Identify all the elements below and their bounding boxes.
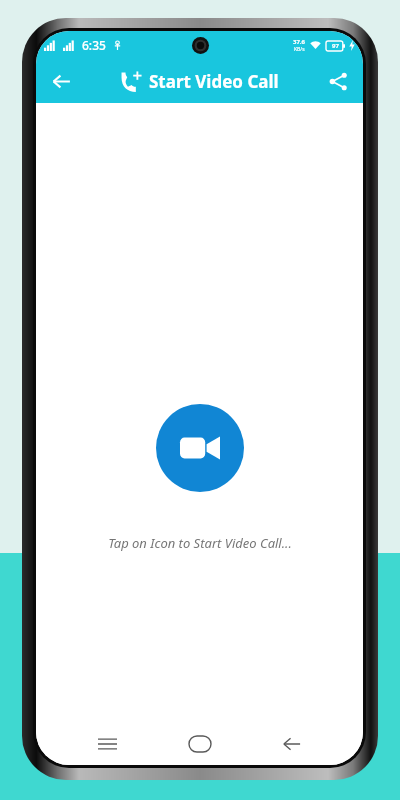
staticText: Tap on Icon to Start Video Call... <box>108 534 292 552</box>
staticText: KB/s <box>294 46 305 53</box>
button[interactable]: Back <box>270 723 314 765</box>
button[interactable]: Start Video Call <box>156 404 244 492</box>
staticText: 37.6 <box>293 38 305 46</box>
staticText: Start Video Call <box>149 70 279 93</box>
staticText: 6:35 <box>82 37 106 53</box>
button[interactable]: Home <box>178 723 222 765</box>
staticText: 97 <box>332 42 339 50</box>
button[interactable]: Back <box>42 62 80 100</box>
button[interactable]: Share <box>320 63 356 99</box>
button[interactable]: Start Video Call <box>120 70 279 93</box>
button[interactable]: Recent apps <box>85 723 129 765</box>
